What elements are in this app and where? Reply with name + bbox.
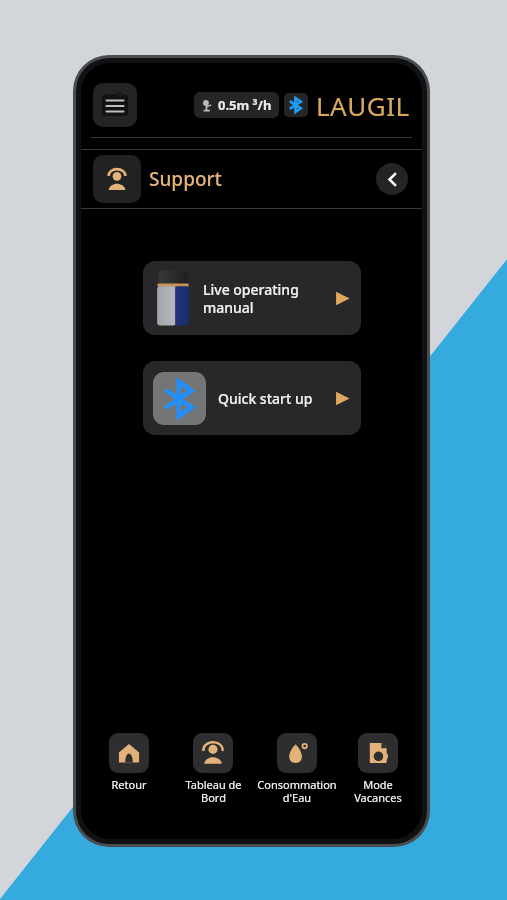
button[interactable]: Back xyxy=(376,163,408,195)
staticText: Live operating manual xyxy=(203,280,299,317)
staticText: Support xyxy=(149,166,222,192)
button[interactable]: Tableau de Bord xyxy=(171,733,255,805)
staticText: Retour xyxy=(111,777,147,792)
button[interactable]: Mode Vacances xyxy=(339,733,416,805)
staticText: Quick start up xyxy=(218,389,313,408)
staticText: Mode Vacances xyxy=(354,777,402,805)
staticText: Tableau de Bord xyxy=(185,777,242,805)
staticText: Consommation d'Eau xyxy=(257,777,337,805)
button[interactable]: Quick start up xyxy=(143,361,361,435)
staticText: LAUGIL xyxy=(316,88,410,123)
button[interactable]: Live operating manual xyxy=(143,261,361,335)
button[interactable]: Menu xyxy=(93,83,137,127)
staticText: 0.5m ³/h xyxy=(218,96,272,114)
button[interactable]: Consommation d'Eau xyxy=(255,733,339,805)
button[interactable]: Bluetooth xyxy=(284,93,308,117)
button[interactable]: Support xyxy=(81,150,422,208)
button[interactable]: Retour xyxy=(87,733,171,792)
